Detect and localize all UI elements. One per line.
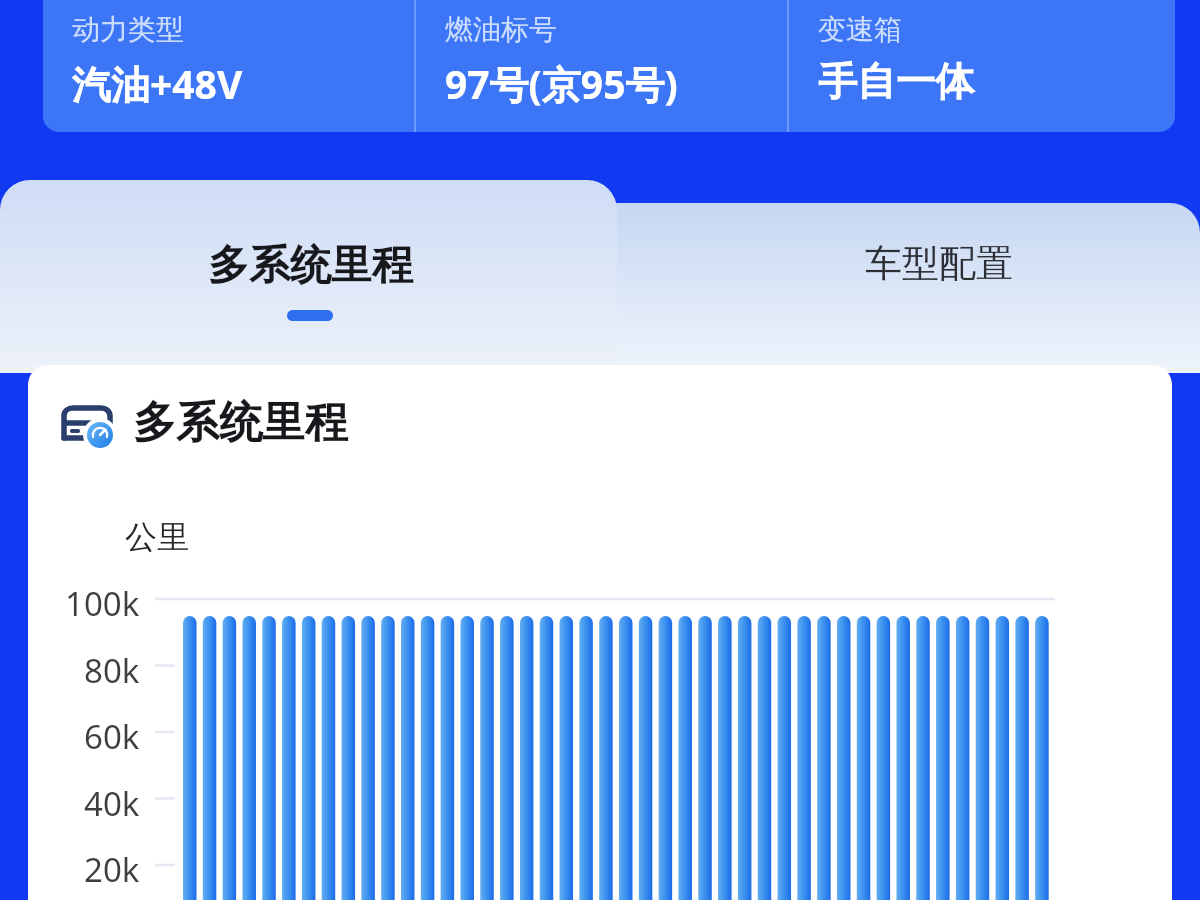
staticText: 多系统里程 <box>208 240 413 292</box>
staticText: 变速箱 <box>818 12 902 47</box>
staticText: 60k <box>84 714 140 759</box>
staticText: 燃油标号 <box>445 12 557 47</box>
staticText: 40k <box>84 781 140 826</box>
button[interactable]: 车型配置 <box>789 240 1089 296</box>
other: Multi-system mileage <box>55 391 119 455</box>
staticText: 100k <box>65 581 140 626</box>
button[interactable]: 燃油标号 <box>416 0 787 132</box>
staticText: 车型配置 <box>865 240 1013 287</box>
staticText: 汽油+48V <box>72 57 243 110</box>
button[interactable]: 多系统里程 <box>160 180 460 321</box>
button[interactable]: 变速箱 <box>789 0 1175 132</box>
staticText: 手自一体 <box>818 57 974 106</box>
staticText: 多系统里程 <box>133 396 348 450</box>
staticText: 公里 <box>125 517 189 557</box>
staticText: 97号(京95号) <box>445 57 678 110</box>
button[interactable]: Multi-system mileage <box>28 365 1172 900</box>
staticText: 20k <box>84 847 140 892</box>
button[interactable]: 动力类型 <box>43 0 414 132</box>
staticText: 80k <box>84 648 140 693</box>
button[interactable]: 动力类型 <box>43 0 1175 132</box>
staticText: 动力类型 <box>72 12 184 47</box>
